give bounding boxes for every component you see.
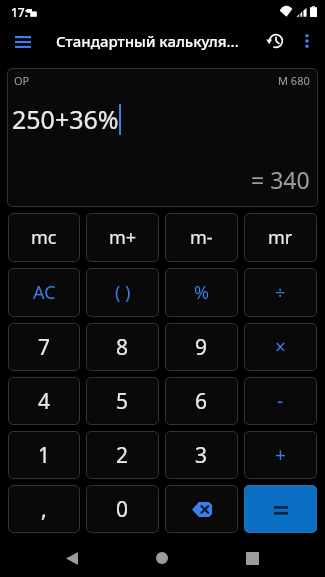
button[interactable]: -: [244, 377, 317, 425]
button[interactable]: 8: [86, 323, 159, 371]
staticText: Стандартный калькуля...: [56, 31, 239, 51]
staticText: 9: [195, 333, 208, 362]
button[interactable]: ( ): [86, 268, 159, 317]
staticText: -: [277, 388, 284, 414]
staticText: 1: [38, 441, 51, 470]
button[interactable]: mr: [244, 213, 317, 262]
button[interactable]: History: [258, 24, 292, 58]
staticText: 0: [116, 495, 129, 524]
staticText: 250+36%: [12, 102, 119, 136]
button[interactable]: 9: [165, 323, 238, 371]
button[interactable]: ×: [244, 323, 317, 371]
staticText: ,: [41, 495, 47, 524]
button[interactable]: 2: [86, 431, 159, 479]
staticText: 8: [116, 333, 129, 362]
button[interactable]: Home: [146, 542, 178, 574]
button[interactable]: 0: [86, 485, 159, 533]
button[interactable]: 4: [8, 377, 80, 425]
button[interactable]: ÷: [244, 268, 317, 317]
button[interactable]: More options: [292, 26, 322, 56]
staticText: ( ): [115, 280, 131, 305]
button[interactable]: Navigation menu: [6, 25, 39, 58]
button[interactable]: 5: [86, 377, 159, 425]
staticText: ÷: [275, 280, 286, 305]
button[interactable]: 6: [165, 377, 238, 425]
button[interactable]: 1: [8, 431, 80, 479]
staticText: m+: [109, 225, 137, 250]
button[interactable]: +: [244, 431, 317, 479]
staticText: ×: [275, 334, 286, 360]
staticText: AC: [33, 280, 56, 305]
staticText: mc: [31, 225, 57, 250]
staticText: 4: [38, 387, 51, 416]
button[interactable]: Recent apps: [236, 542, 268, 574]
staticText: M 680: [278, 73, 310, 88]
staticText: OP: [14, 73, 30, 88]
button[interactable]: m-: [165, 213, 238, 262]
button[interactable]: [244, 485, 317, 533]
button[interactable]: 7: [8, 323, 80, 371]
button[interactable]: mc: [8, 213, 80, 262]
button[interactable]: %: [165, 268, 238, 317]
staticText: m-: [190, 225, 213, 250]
button[interactable]: [165, 485, 238, 533]
staticText: 17:: [11, 4, 28, 20]
staticText: 2: [116, 441, 129, 470]
staticText: 7: [38, 333, 51, 362]
button[interactable]: AC: [8, 268, 80, 317]
button[interactable]: m+: [86, 213, 159, 262]
button[interactable]: Back: [56, 542, 88, 574]
staticText: +: [275, 442, 286, 468]
staticText: mr: [268, 225, 293, 250]
staticText: %: [194, 280, 209, 305]
staticText: = 340: [251, 164, 310, 195]
staticText: 3: [195, 441, 208, 470]
staticText: 6: [195, 387, 208, 416]
button[interactable]: 3: [165, 431, 238, 479]
staticText: 5: [116, 387, 129, 416]
button[interactable]: ,: [8, 485, 80, 533]
